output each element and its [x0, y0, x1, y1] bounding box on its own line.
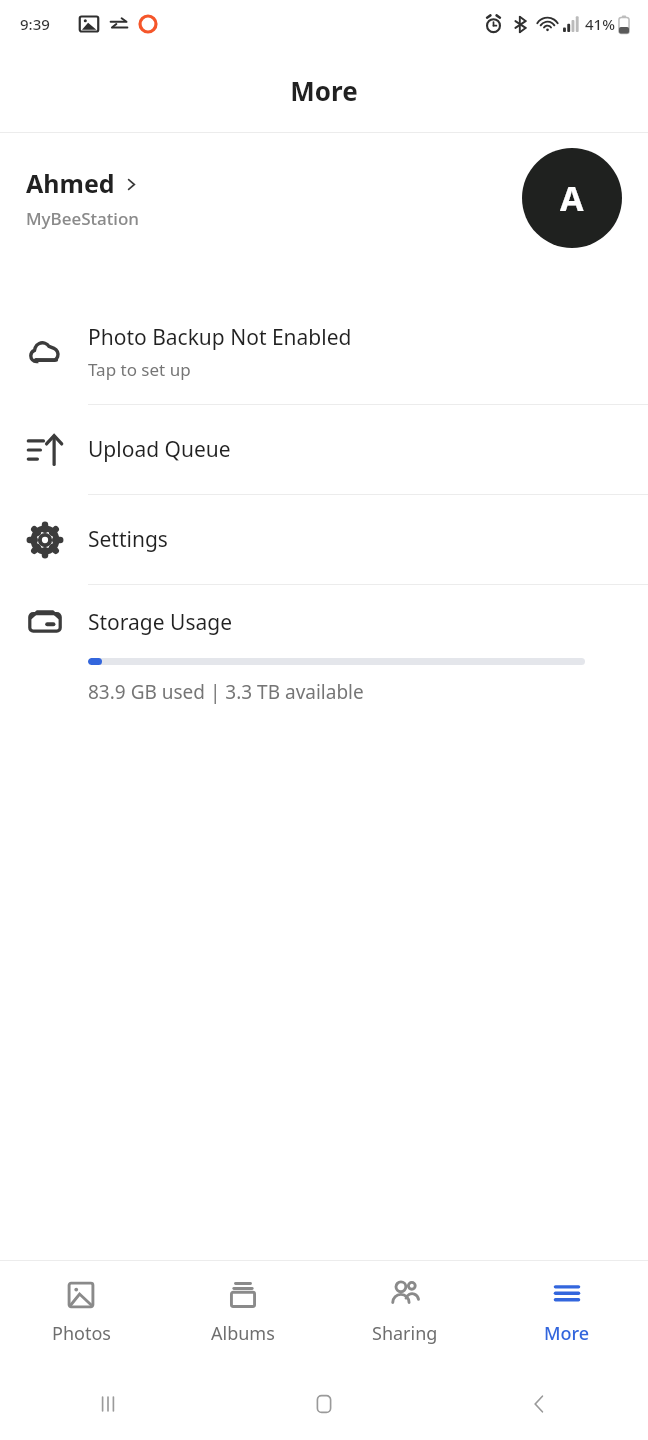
- staticText: Storage Usage: [88, 608, 233, 637]
- staticText: Tap to set up: [88, 358, 191, 381]
- staticText: 41%: [585, 14, 615, 34]
- button[interactable]: Ahmed: [0, 133, 648, 263]
- staticText: 9:39: [20, 14, 50, 34]
- staticText: MyBeeStation: [26, 207, 139, 230]
- staticText: A: [560, 175, 584, 221]
- button[interactable]: Home: [216, 1368, 432, 1440]
- staticText: Settings: [88, 525, 168, 554]
- button[interactable]: More: [486, 1260, 648, 1368]
- staticText: Photo Backup Not Enabled: [88, 323, 352, 352]
- staticText: More: [290, 73, 358, 108]
- button[interactable]: Photos: [0, 1260, 162, 1368]
- button[interactable]: Sharing: [324, 1260, 486, 1368]
- button[interactable]: Recents: [0, 1368, 216, 1440]
- button[interactable]: Settings: [0, 495, 648, 584]
- staticText: 83.9 GB used | 3.3 TB available: [88, 679, 364, 705]
- staticText: Ahmed: [26, 166, 115, 200]
- button[interactable]: Albums: [162, 1260, 324, 1368]
- staticText: More: [544, 1321, 590, 1346]
- button[interactable]: Back: [432, 1368, 648, 1440]
- button[interactable]: Photo Backup Not Enabled: [0, 299, 648, 404]
- staticText: Photos: [52, 1321, 111, 1346]
- button[interactable]: Storage Usage: [0, 585, 648, 721]
- staticText: Sharing: [372, 1321, 438, 1346]
- button[interactable]: Upload Queue: [0, 405, 648, 494]
- staticText: Upload Queue: [88, 435, 231, 464]
- staticText: Albums: [211, 1321, 275, 1346]
